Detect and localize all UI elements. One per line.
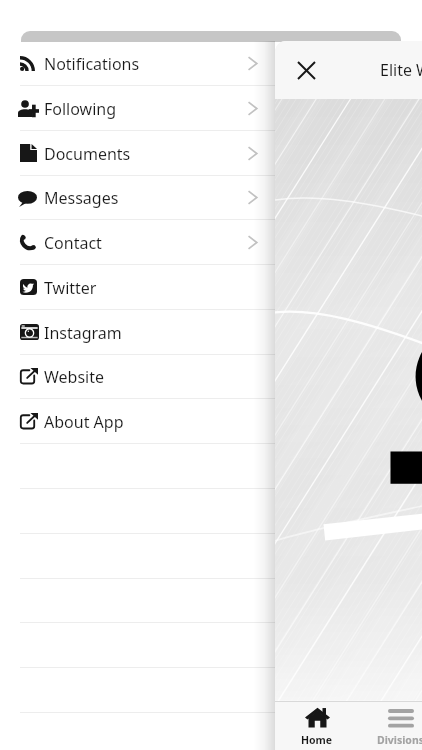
staticText: Website: [44, 366, 105, 388]
button[interactable]: Following: [0, 86, 422, 131]
button[interactable]: Website: [0, 354, 422, 399]
button[interactable]: Divisions: [359, 702, 422, 750]
button[interactable]: Contact: [0, 220, 422, 265]
button[interactable]: Notifications: [0, 41, 422, 86]
button[interactable]: Home: [275, 702, 359, 750]
button[interactable]: Messages: [0, 175, 422, 220]
staticText: Twitter: [44, 277, 97, 299]
button[interactable]: Close: [288, 52, 324, 88]
staticText: About App: [44, 411, 124, 433]
button[interactable]: About App: [0, 399, 422, 444]
staticText: Elite Wrestling: [380, 59, 422, 81]
staticText: Messages: [44, 187, 119, 209]
staticText: Following: [44, 98, 117, 120]
button[interactable]: Instagram: [0, 310, 422, 355]
staticText: Documents: [44, 143, 131, 165]
staticText: Notifications: [44, 53, 140, 75]
staticText: Home: [301, 733, 333, 747]
button[interactable]: Documents: [0, 131, 422, 176]
staticText: Instagram: [44, 322, 122, 344]
staticText: Contact: [44, 232, 102, 254]
staticText: Divisions: [377, 733, 422, 747]
button[interactable]: Twitter: [0, 265, 422, 310]
